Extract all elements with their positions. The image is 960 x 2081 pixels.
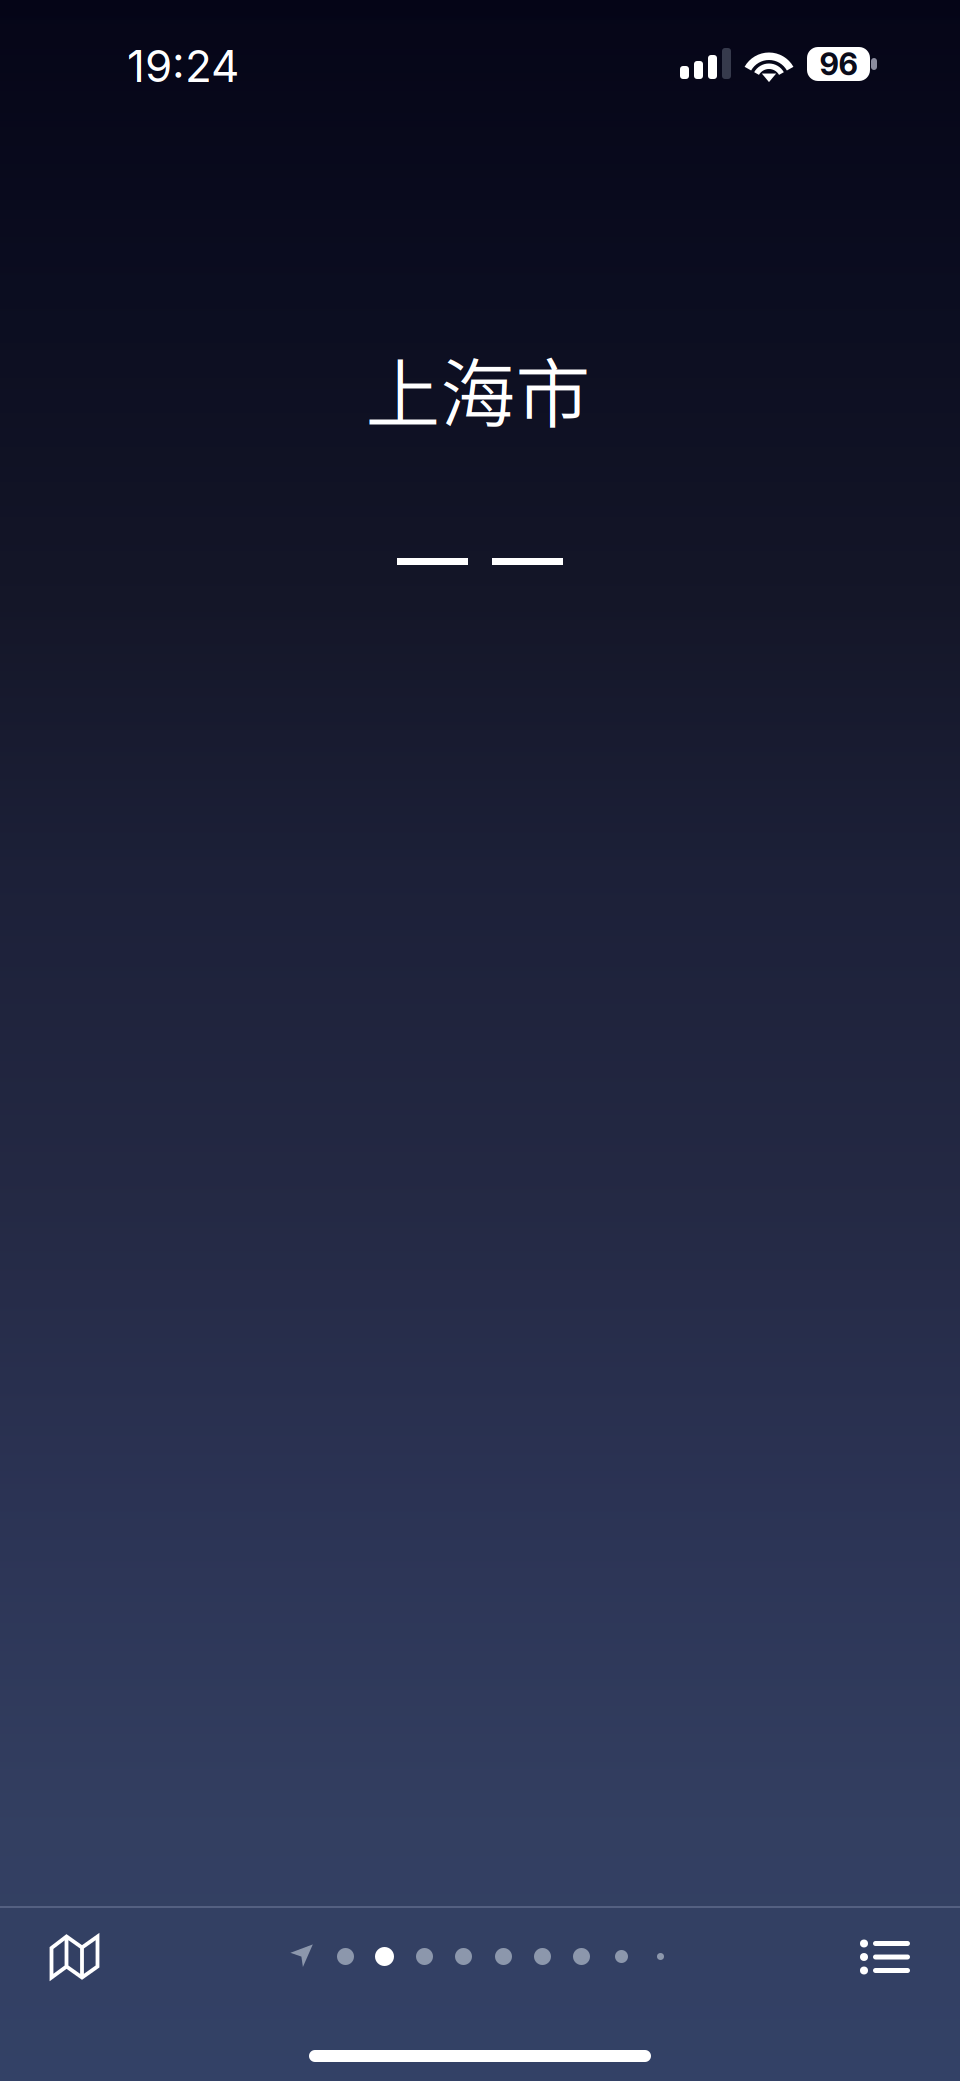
staticText: 96	[819, 45, 857, 82]
staticText: 上海市	[365, 335, 590, 443]
staticText: 19:24	[127, 39, 239, 93]
button[interactable]: City list	[825, 1910, 945, 2020]
button[interactable]: Weather map	[14, 1910, 134, 2020]
